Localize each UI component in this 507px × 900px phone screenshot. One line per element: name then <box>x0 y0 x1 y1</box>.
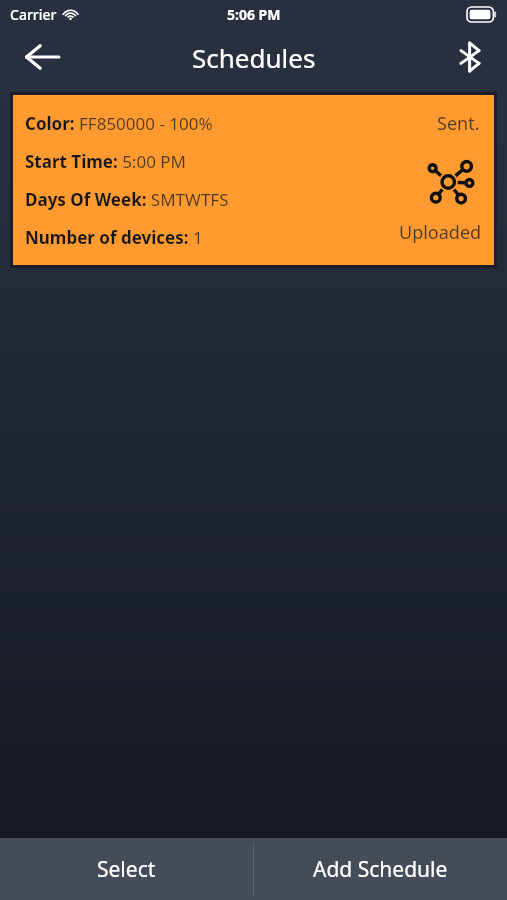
staticText: Sent. <box>437 111 480 136</box>
staticText: 5:06 PM <box>227 5 281 24</box>
staticText: Select <box>97 855 156 884</box>
staticText: Schedules <box>192 40 316 75</box>
staticText: Add Schedule <box>313 855 448 884</box>
button[interactable]: Color: FF850000 - 100% <box>13 95 494 265</box>
staticText: Color: FF850000 - 100% <box>25 112 213 135</box>
button[interactable]: Add Schedule <box>254 838 507 900</box>
button[interactable]: Back <box>18 33 66 81</box>
button[interactable]: Select <box>0 838 253 900</box>
staticText: Start Time: 5:00 PM <box>25 150 186 173</box>
staticText: Number of devices: 1 <box>25 226 203 249</box>
staticText: Days Of Week: SMTWTFS <box>25 188 229 211</box>
button[interactable]: Bluetooth <box>447 34 493 80</box>
staticText: Uploaded <box>399 220 482 245</box>
staticText: Carrier <box>10 5 57 24</box>
other: Share network <box>428 159 474 205</box>
